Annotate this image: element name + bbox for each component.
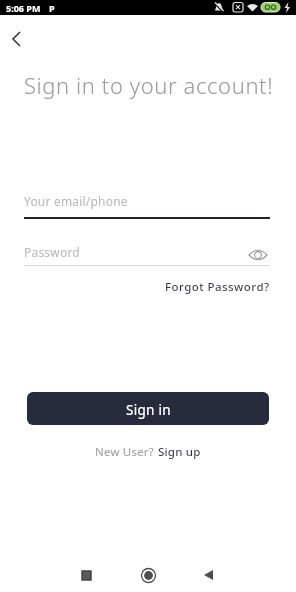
staticText: Sign in bbox=[126, 401, 171, 419]
button[interactable] bbox=[2, 25, 30, 53]
button[interactable]: Your email/phone bbox=[24, 188, 270, 216]
button[interactable] bbox=[134, 561, 162, 589]
staticText: 5:06 PM bbox=[6, 2, 41, 14]
button[interactable]: Sign in bbox=[27, 392, 269, 425]
staticText: P bbox=[49, 2, 55, 14]
button[interactable] bbox=[194, 561, 222, 589]
staticText: Sign in to your account! bbox=[24, 70, 274, 100]
staticText: New User? bbox=[95, 444, 158, 460]
button[interactable]: Password bbox=[24, 239, 270, 265]
staticText: Your email/phone bbox=[24, 193, 128, 209]
staticText: Password bbox=[24, 244, 80, 260]
button[interactable] bbox=[72, 561, 100, 589]
staticText: Sign up bbox=[158, 444, 201, 460]
button[interactable]: New User? bbox=[95, 444, 201, 460]
button[interactable]: Forgot Password? bbox=[165, 279, 270, 295]
